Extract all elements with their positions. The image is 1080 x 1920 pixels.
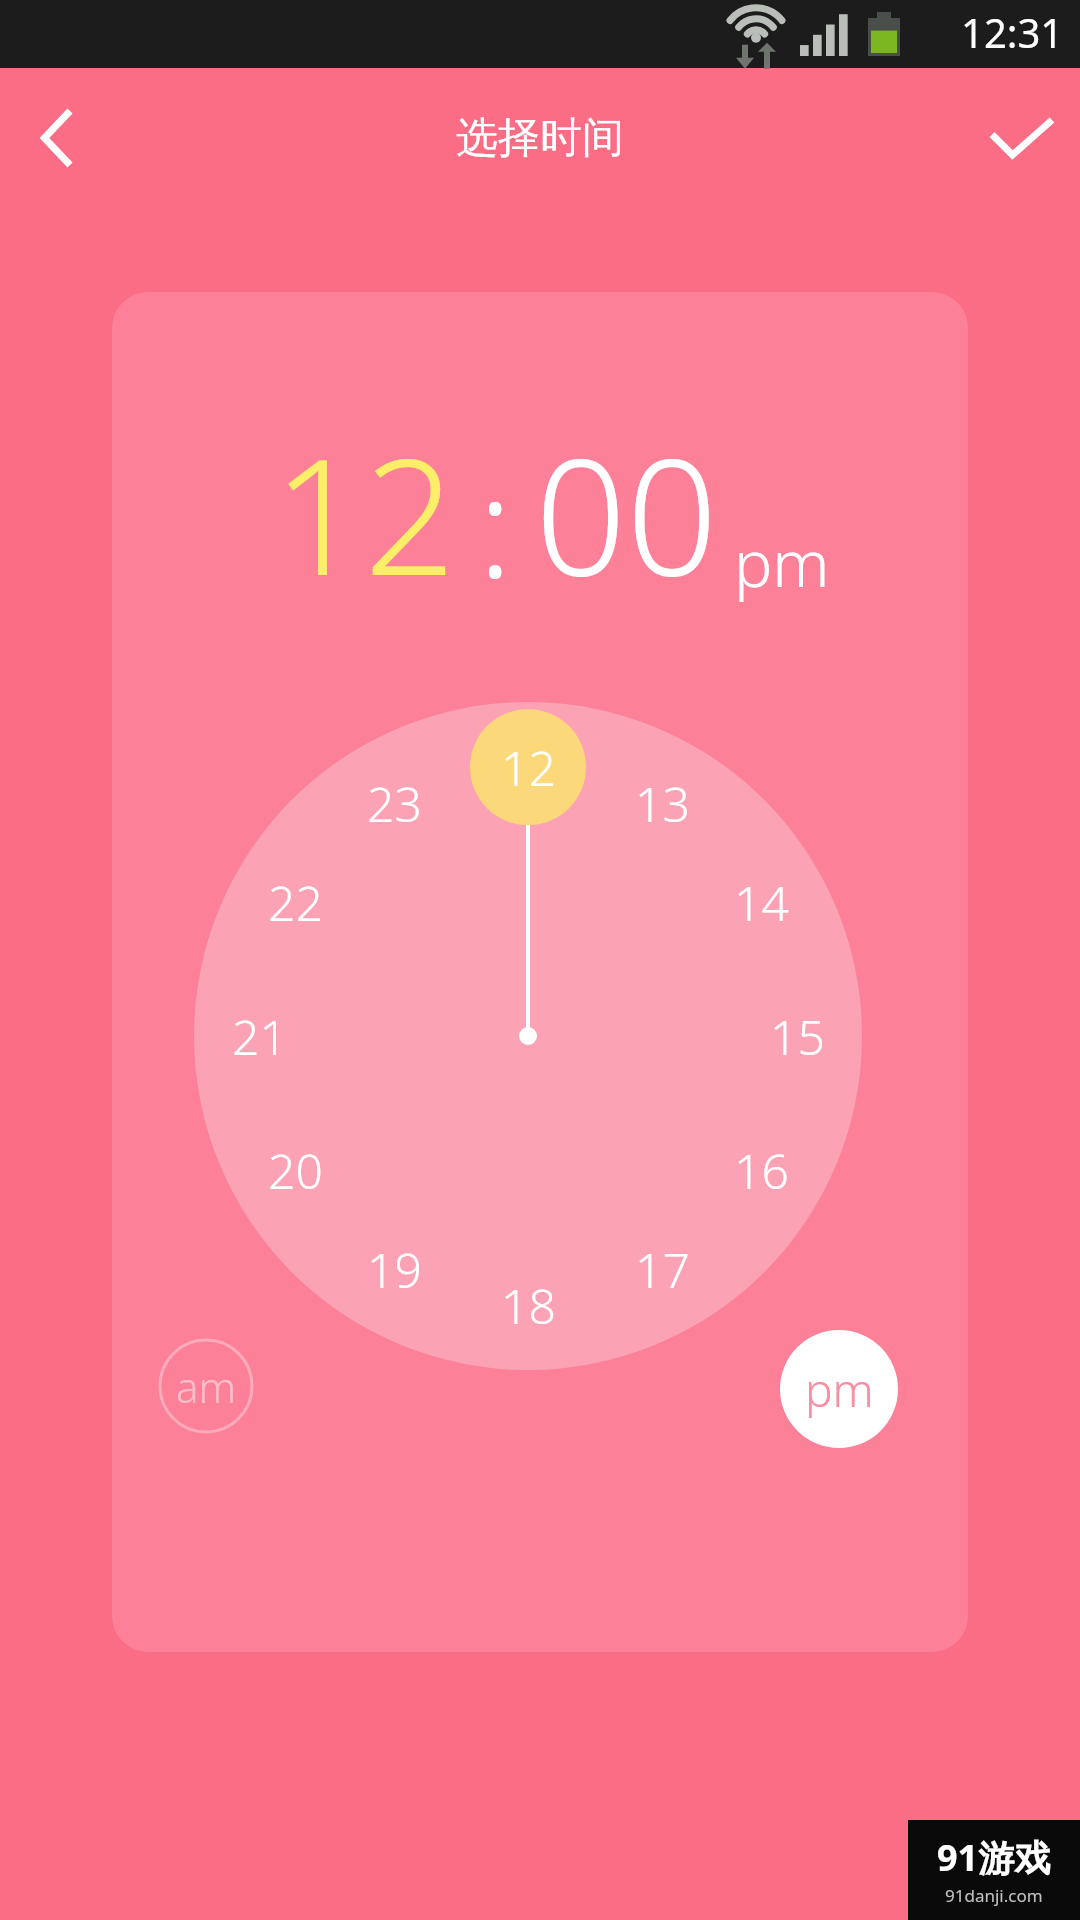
staticText: 19 (367, 1237, 422, 1302)
staticText: 16 (734, 1138, 789, 1203)
staticText: 15 (770, 1004, 825, 1069)
staticText: 14 (734, 870, 789, 935)
staticText: 选择时间 (456, 112, 624, 165)
staticText: 20 (268, 1138, 323, 1203)
staticText: 12:31 (961, 5, 1064, 59)
button[interactable]: am (158, 1338, 254, 1434)
staticText: 21 (232, 1004, 287, 1069)
staticText: 18 (501, 1273, 556, 1338)
staticText: pm (805, 1358, 874, 1421)
button[interactable]: Back (0, 80, 116, 196)
staticText: 00 (535, 404, 718, 622)
staticText: pm (734, 519, 830, 606)
staticText: 22 (268, 870, 323, 935)
button[interactable]: pm (780, 1330, 898, 1448)
staticText: 17 (635, 1237, 690, 1302)
staticText: 23 (367, 771, 422, 836)
staticText: 12 (501, 735, 556, 800)
staticText: 13 (635, 771, 690, 836)
button[interactable]: Confirm (964, 80, 1080, 196)
staticText: 91游戏 (937, 1833, 1051, 1882)
staticText: : (478, 427, 513, 618)
staticText: am (176, 1358, 237, 1415)
staticText: 91danji.com (945, 1884, 1043, 1907)
staticText: 12 (273, 404, 456, 622)
